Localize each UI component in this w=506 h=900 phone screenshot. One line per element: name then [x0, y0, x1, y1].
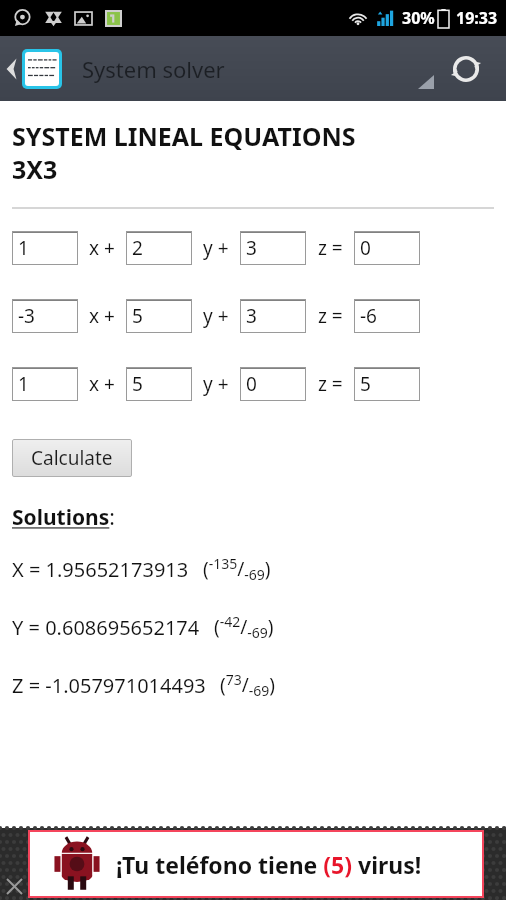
staticText: 1 — [18, 371, 29, 397]
staticText: x + — [89, 235, 115, 261]
staticText: X = 1.95652173913 — [12, 556, 189, 583]
staticText: y + — [203, 371, 229, 397]
staticText: 5 — [360, 371, 371, 397]
button[interactable]: 5 — [126, 367, 192, 401]
staticText: Calculate — [31, 445, 113, 471]
staticText: z = — [318, 371, 343, 397]
button[interactable]: 2 — [126, 231, 192, 265]
button[interactable]: -3 — [12, 299, 78, 333]
staticText: 5 — [132, 303, 143, 329]
button[interactable]: 0 — [240, 367, 306, 401]
staticText: SYSTEM LINEAL EQUATIONS 3X3 — [12, 119, 356, 186]
staticText: x + — [89, 371, 115, 397]
button[interactable]: Calculate — [12, 439, 132, 477]
staticText: x + — [89, 303, 115, 329]
staticText: 1 — [18, 235, 29, 261]
button[interactable]: -6 — [354, 299, 420, 333]
button[interactable]: Navigate up — [0, 49, 66, 89]
staticText: 19:33 — [456, 7, 498, 29]
staticText: 3 — [246, 303, 257, 329]
staticText: 2 — [132, 235, 143, 261]
button[interactable]: 5 — [126, 299, 192, 333]
staticText: 30% — [402, 7, 435, 29]
staticText: z = — [318, 303, 343, 329]
staticText: System solver — [82, 54, 225, 84]
staticText: (73/-69) — [220, 670, 276, 700]
button[interactable]: 0 — [354, 231, 420, 265]
staticText: (-135/-69) — [203, 554, 271, 584]
staticText: Solutions: — [12, 503, 115, 532]
staticText: (-42/-69) — [214, 612, 274, 642]
button[interactable]: 1 — [12, 231, 78, 265]
staticText: 5 — [132, 371, 143, 397]
staticText: 0 — [360, 235, 371, 261]
staticText: -3 — [18, 303, 35, 329]
staticText: Z = -1.057971014493 — [12, 672, 206, 699]
staticText: 3 — [246, 235, 257, 261]
staticText: -6 — [360, 303, 377, 329]
button[interactable]: 5 — [354, 367, 420, 401]
button[interactable]: Close ad — [0, 872, 28, 900]
button[interactable]: ¡Tu teléfono tiene (5) virus! — [28, 830, 484, 898]
staticText: 0 — [246, 371, 257, 397]
button[interactable]: 3 — [240, 299, 306, 333]
button[interactable]: 1 — [12, 367, 78, 401]
staticText: y + — [203, 235, 229, 261]
button[interactable]: 3 — [240, 231, 306, 265]
staticText: ¡Tu teléfono tiene (5) virus! — [116, 849, 422, 880]
staticText: z = — [318, 235, 343, 261]
button[interactable]: Refresh — [442, 45, 490, 93]
staticText: y + — [203, 303, 229, 329]
staticText: Y = 0.608695652174 — [12, 614, 200, 641]
